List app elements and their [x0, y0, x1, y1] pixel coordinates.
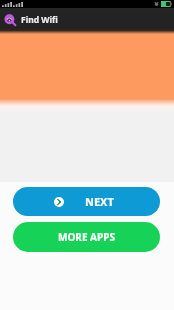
staticText: MORE APPS [58, 230, 115, 244]
staticText: NEXT [85, 194, 114, 209]
other: Find Wifi [5, 15, 16, 26]
button[interactable]: NEXT [13, 187, 160, 216]
button[interactable]: MORE APPS [13, 222, 160, 252]
staticText: Find Wifi [21, 14, 58, 26]
